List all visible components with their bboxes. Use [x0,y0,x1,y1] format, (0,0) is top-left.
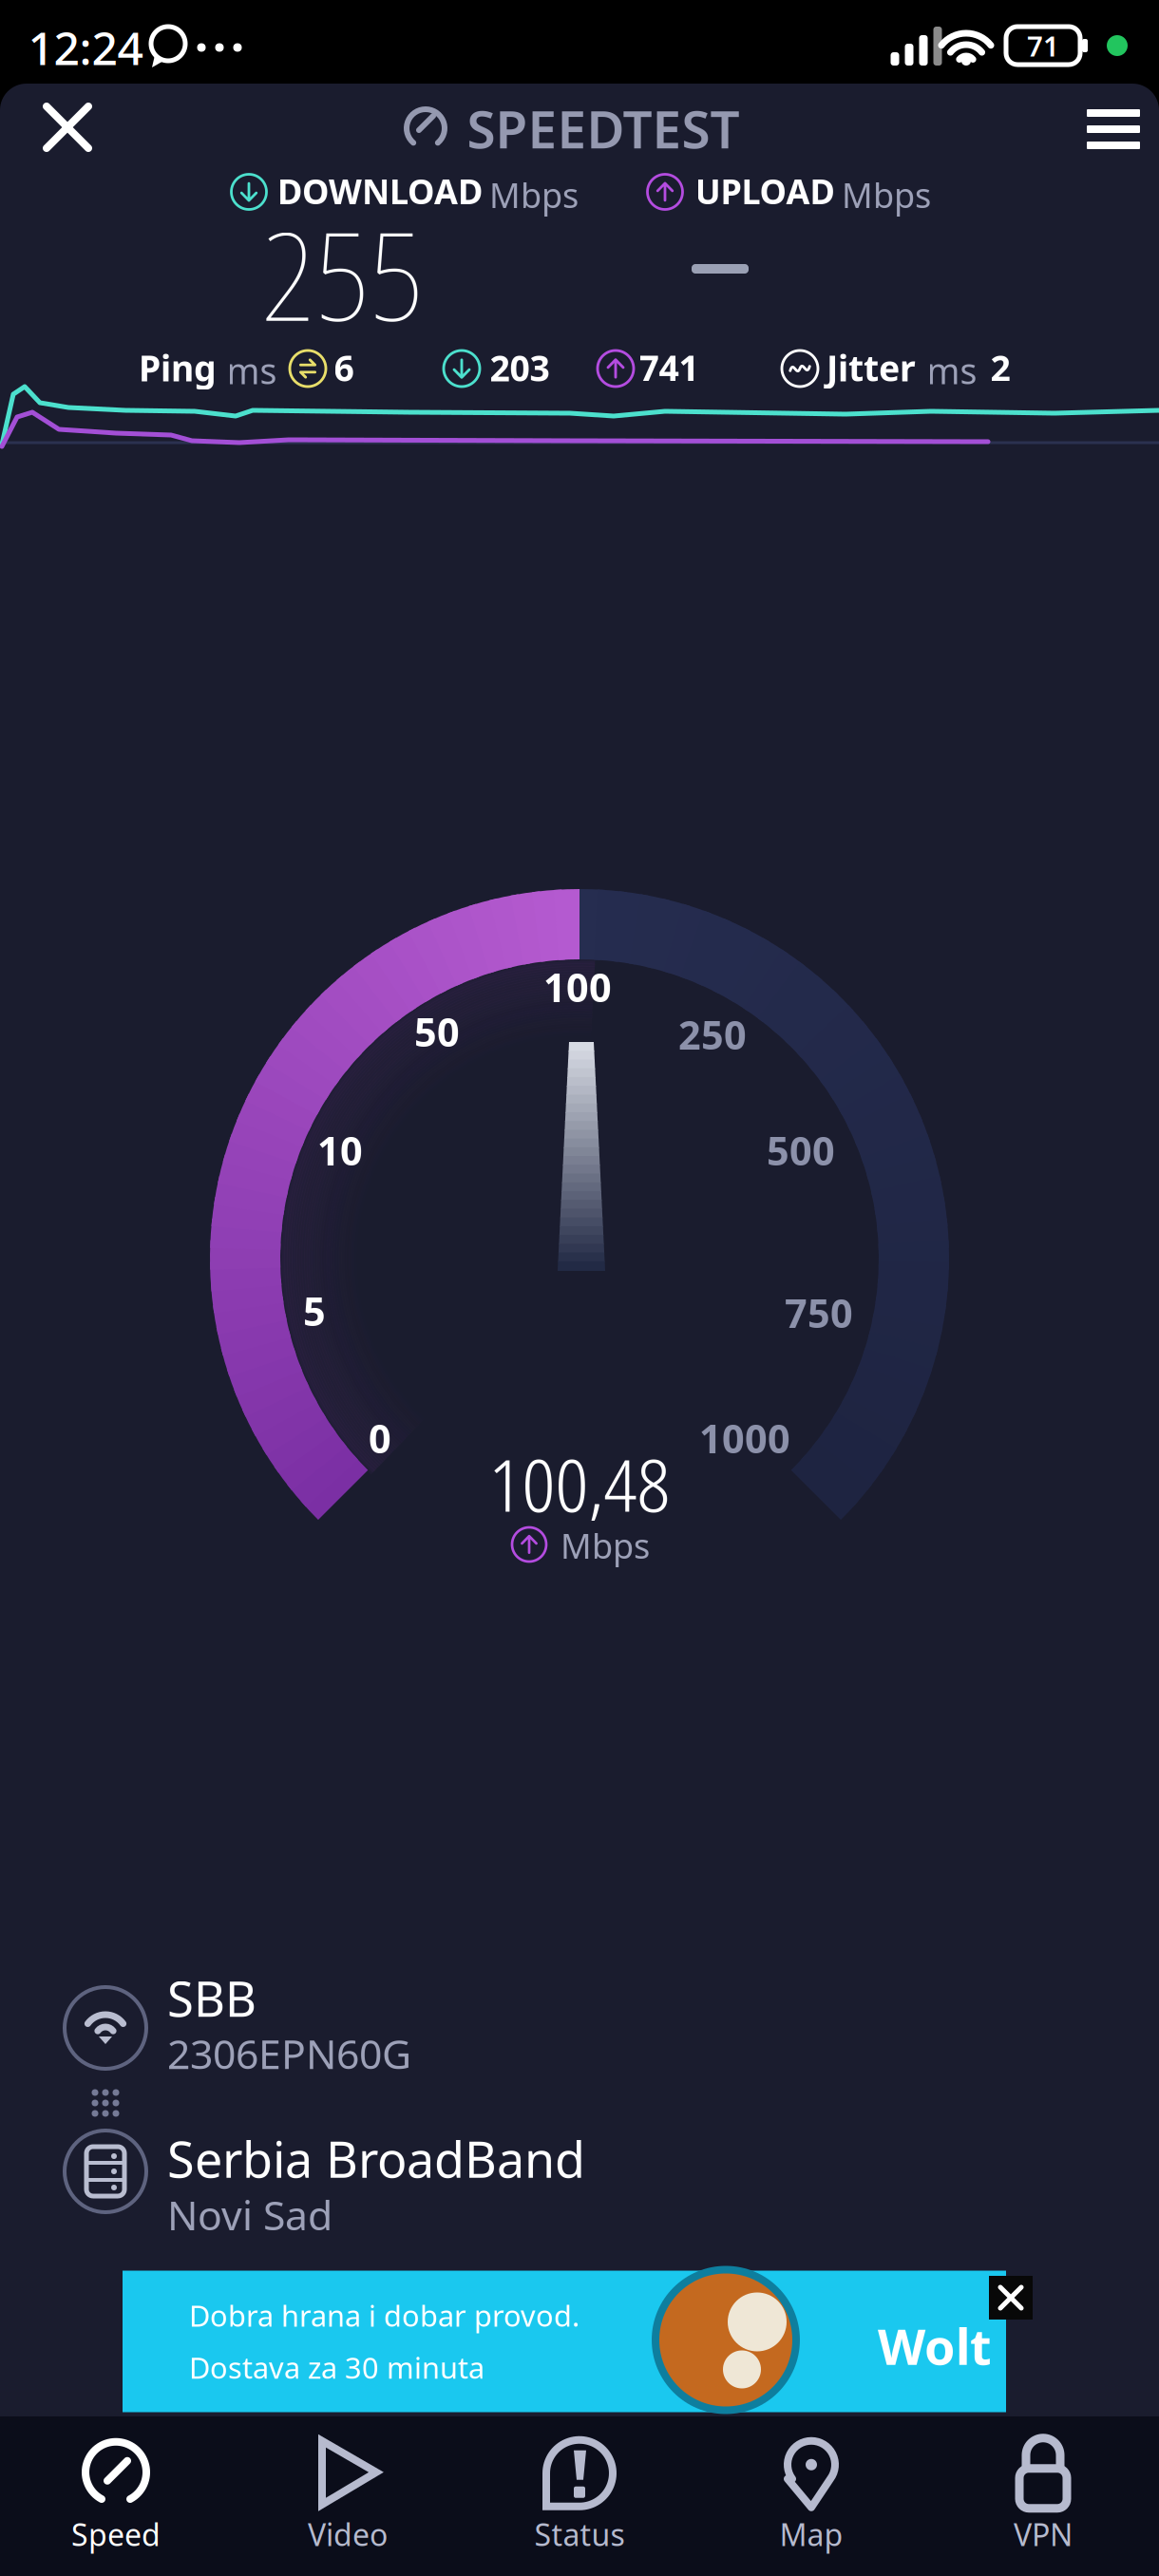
button[interactable]: Map [695,2416,927,2576]
staticText: 250 [678,1008,747,1061]
staticText: 100 [543,961,612,1013]
staticText: Video [308,2514,388,2554]
staticText: 1000 [699,1412,790,1464]
staticText: VPN [1014,2514,1073,2554]
staticText: Speed [71,2514,161,2554]
button[interactable]: Video [232,2416,464,2576]
staticText: 71 [1027,27,1059,64]
staticText: 0 [369,1412,391,1464]
staticText: Map [779,2514,843,2554]
staticText: 12:24 [28,17,143,78]
staticText: SPEEDTEST [467,94,740,163]
staticText: DOWNLOAD [277,168,483,214]
button[interactable]: Close [23,84,112,171]
staticText: Dobra hrana i dobar provod. [189,2296,579,2335]
staticText: 5 [303,1285,326,1337]
staticText: 203 [490,344,550,391]
staticText: 10 [317,1124,363,1176]
button[interactable]: Serbia BroadBand [0,2116,1159,2249]
staticText: Mbps [489,172,579,217]
staticText: ms [227,347,277,394]
staticText: Serbia BroadBand [167,2126,585,2191]
button[interactable]: VPN [927,2416,1159,2576]
staticText: 500 [767,1124,835,1176]
staticText: Mbps [842,172,931,217]
staticText: Wolt [878,2313,992,2379]
staticText: Novi Sad [167,2188,332,2242]
staticText: UPLOAD [695,168,835,214]
staticText: 100,48 [489,1434,670,1533]
staticText: 2 [990,344,1010,391]
staticText: Jitter [826,344,916,391]
button[interactable]: Dobra hrana i dobar provod. [123,2271,1006,2412]
staticText: 6 [334,344,354,391]
staticText: 741 [639,344,699,391]
button[interactable]: Close ad [989,2276,1033,2320]
staticText: 2306EPN60G [167,2026,411,2080]
staticText: Mbps [560,1523,650,1568]
button[interactable]: Status [464,2416,695,2576]
staticText: Ping [139,344,217,391]
button[interactable]: SBB [0,1956,1159,2089]
staticText: 50 [414,1006,460,1058]
staticText: 255 [261,191,423,356]
staticText: SBB [167,1966,256,2030]
staticText: 750 [785,1287,853,1339]
button[interactable]: Speed [0,2416,232,2576]
staticText: ms [927,347,977,394]
staticText: Status [534,2514,625,2554]
staticText: Dostava za 30 minuta [189,2348,484,2387]
button[interactable]: Menu [1068,84,1159,175]
